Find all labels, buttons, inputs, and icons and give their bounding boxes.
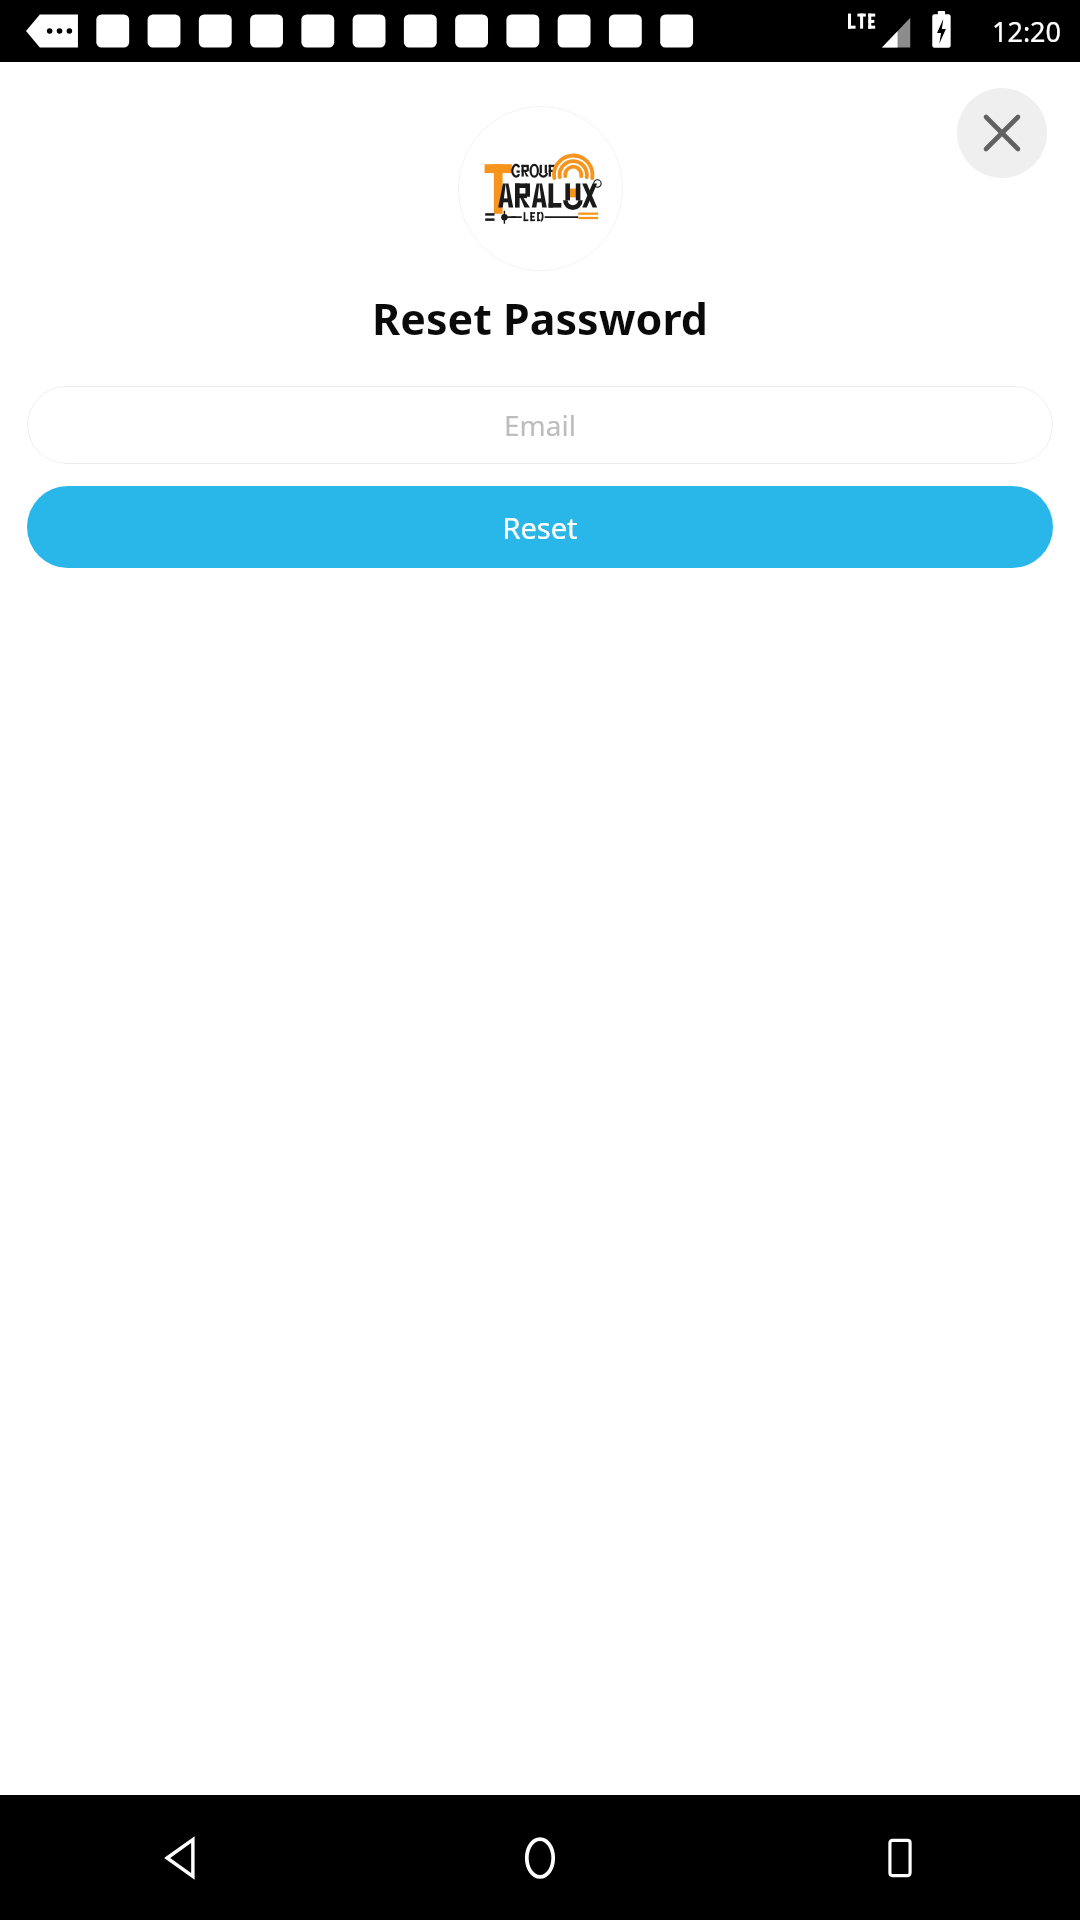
button[interactable]: Reset — [27, 486, 1053, 568]
button[interactable]: Email — [27, 386, 1053, 464]
staticText: Reset — [502, 508, 578, 547]
staticText: Reset Password — [372, 289, 708, 348]
button[interactable]: Home — [360, 1795, 720, 1920]
staticText: Email — [504, 406, 576, 444]
button[interactable]: Recent apps — [720, 1795, 1080, 1920]
button[interactable]: Close — [957, 88, 1047, 178]
staticText: 12:20 — [992, 13, 1062, 50]
button[interactable]: Back — [0, 1795, 360, 1920]
